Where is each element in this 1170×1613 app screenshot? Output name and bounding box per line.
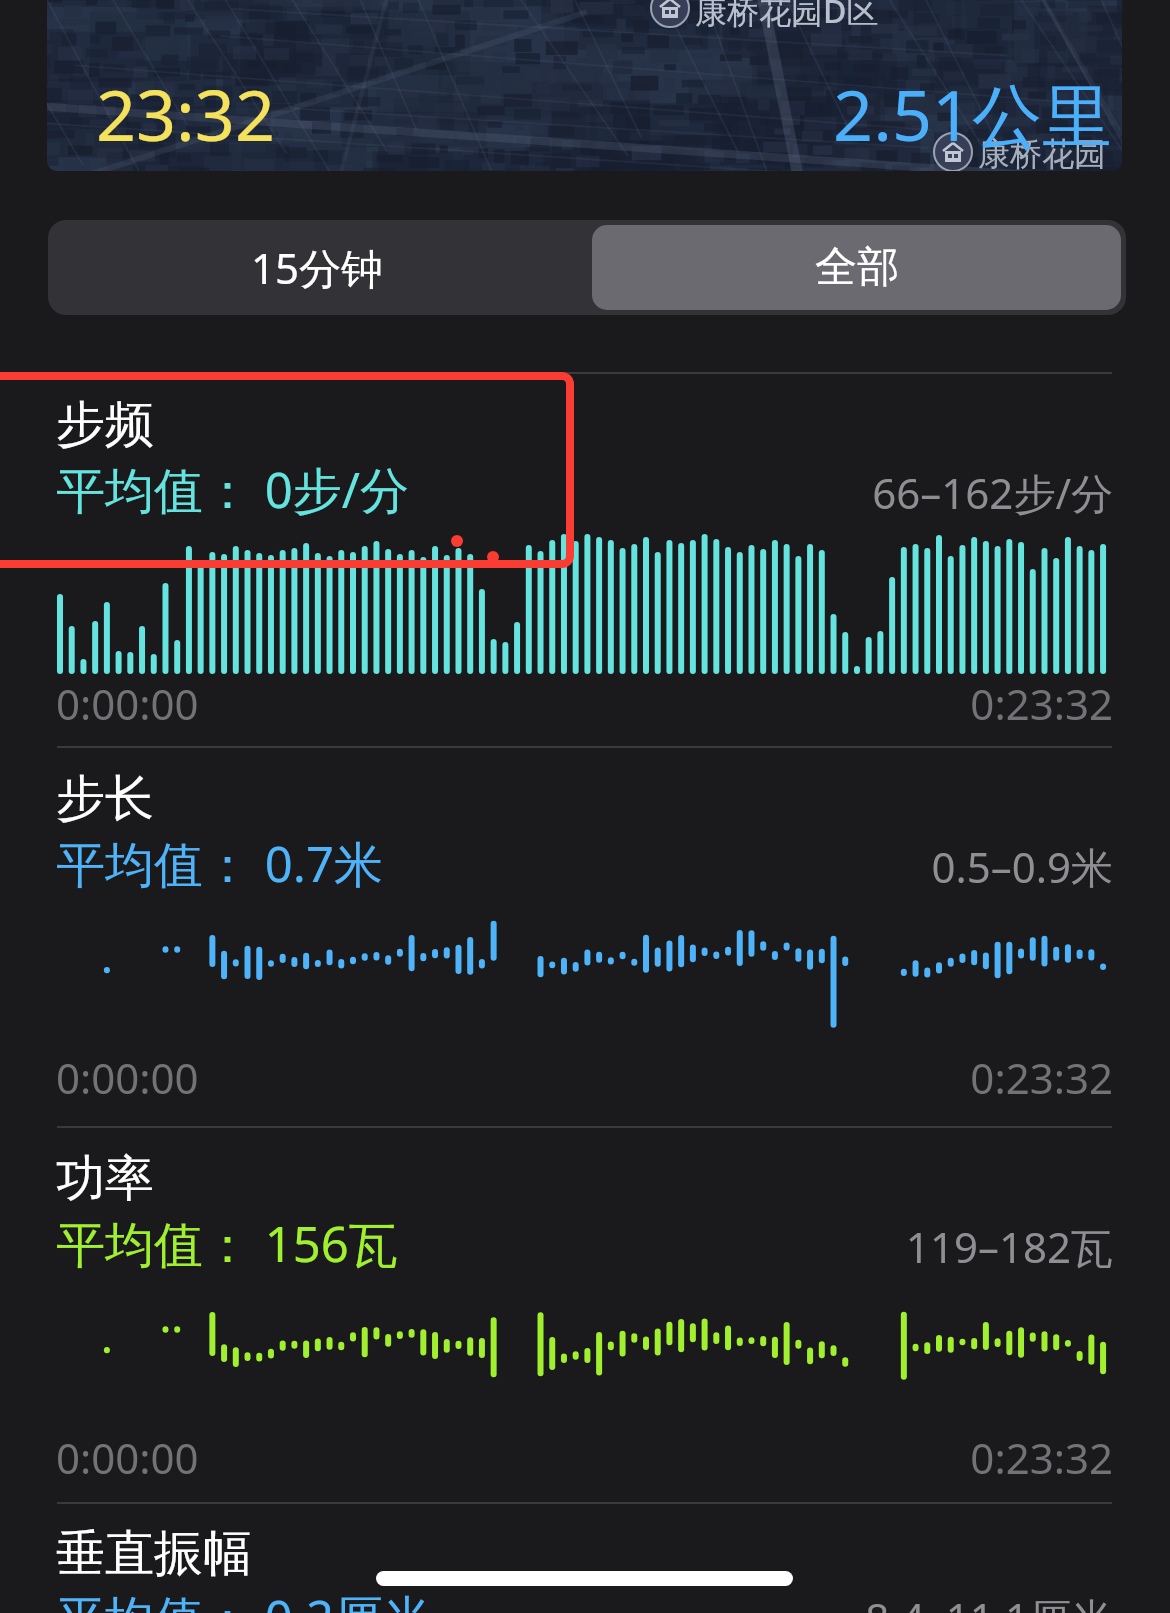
staticText: 66–162步/分 bbox=[0, 464, 1113, 521]
staticText: 0.5–0.9米 bbox=[0, 838, 1113, 895]
button[interactable]: 15分钟 bbox=[48, 220, 587, 315]
staticText: 平均值： 0步/分 bbox=[56, 456, 409, 523]
staticText: 0:00:00 bbox=[56, 1429, 199, 1486]
button[interactable]: 步长 bbox=[0, 746, 1170, 1120]
staticText: 康桥花园 bbox=[978, 134, 1106, 171]
staticText: 8.4–11.1厘米 bbox=[0, 1589, 1113, 1613]
staticText: 2.51公里 bbox=[0, 66, 1112, 162]
staticText: 119–182瓦 bbox=[0, 1218, 1113, 1275]
staticText: 0:00:00 bbox=[56, 1049, 199, 1106]
staticText: 0:23:32 bbox=[0, 1049, 1113, 1106]
staticText: 15分钟 bbox=[251, 239, 384, 296]
staticText: 0:23:32 bbox=[0, 675, 1113, 732]
button[interactable]: 功率 bbox=[0, 1126, 1170, 1500]
staticText: 全部 bbox=[815, 241, 899, 294]
staticText: 垂直振幅 bbox=[56, 1523, 252, 1585]
staticText: 功率 bbox=[56, 1148, 154, 1210]
staticText: 平均值： 0.2厘米 bbox=[56, 1584, 432, 1613]
staticText: 步长 bbox=[56, 768, 154, 830]
staticText: 23:32 bbox=[96, 66, 275, 161]
button[interactable]: 全部 bbox=[592, 225, 1121, 310]
button[interactable]: Route map bbox=[47, 0, 1122, 171]
staticText: 步频 bbox=[56, 394, 154, 456]
staticText: 平均值： 0.7米 bbox=[56, 830, 383, 897]
staticText: 0:23:32 bbox=[0, 1429, 1113, 1486]
staticText: 康桥花园D区 bbox=[695, 0, 879, 33]
staticText: 平均值： 156瓦 bbox=[56, 1210, 398, 1277]
staticText: 0:00:00 bbox=[56, 675, 199, 732]
button[interactable]: 步频 bbox=[0, 372, 1170, 746]
